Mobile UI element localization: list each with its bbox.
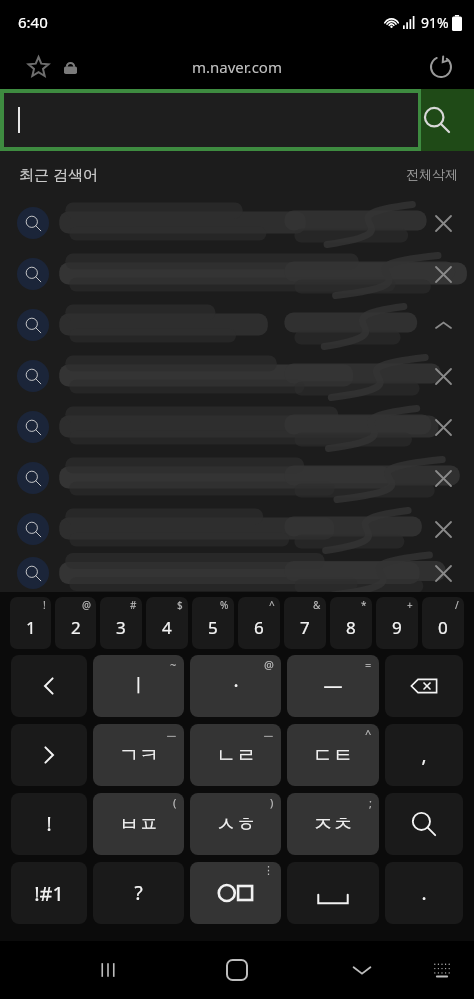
- button[interactable]: ㅡ: [93, 724, 184, 786]
- staticText: (: [173, 795, 177, 810]
- staticText: ㅡ: [263, 726, 274, 740]
- button[interactable]: &: [284, 597, 326, 649]
- button[interactable]: ;: [287, 793, 379, 855]
- staticText: 8: [346, 616, 356, 639]
- button[interactable]: $: [146, 597, 188, 649]
- button[interactable]: %: [192, 597, 234, 649]
- button[interactable]: Emoji: [190, 862, 281, 924]
- staticText: ^: [365, 726, 372, 741]
- button[interactable]: #: [100, 597, 142, 649]
- staticText: #: [130, 598, 137, 612]
- button[interactable]: Recents: [88, 950, 128, 990]
- button[interactable]: Home: [215, 948, 259, 992]
- staticText: 0: [438, 616, 448, 639]
- button[interactable]: .: [385, 862, 463, 924]
- button[interactable]: Remove: [0, 350, 474, 401]
- staticText: 6: [254, 616, 264, 639]
- button[interactable]: Bookmark: [22, 51, 54, 83]
- button[interactable]: ,: [385, 724, 463, 786]
- button[interactable]: Backspace: [385, 655, 463, 717]
- staticText: 91%: [421, 13, 449, 32]
- staticText: ㅈㅊ: [313, 812, 353, 837]
- staticText: /: [455, 598, 459, 612]
- button[interactable]: Remove: [426, 308, 460, 342]
- button[interactable]: Space: [287, 862, 379, 924]
- staticText: 4: [162, 616, 172, 639]
- button[interactable]: ^: [238, 597, 280, 649]
- staticText: ㅡ: [166, 726, 177, 740]
- button[interactable]: Hide keyboard: [342, 950, 382, 990]
- staticText: ㄴㄹ: [216, 743, 256, 768]
- button[interactable]: 전체삭제: [402, 160, 462, 188]
- button[interactable]: ?: [93, 862, 184, 924]
- staticText: !: [46, 811, 52, 837]
- staticText: &: [313, 598, 321, 612]
- staticText: +: [407, 598, 413, 612]
- button[interactable]: !: [11, 793, 87, 855]
- button[interactable]: Remove: [426, 461, 460, 495]
- staticText: 9: [392, 616, 402, 639]
- button[interactable]: *: [330, 597, 372, 649]
- staticText: ,: [421, 742, 427, 768]
- staticText: m.naver.com: [192, 57, 282, 77]
- button[interactable]: Switch keyboard: [424, 952, 460, 988]
- button[interactable]: Remove: [426, 257, 460, 291]
- button[interactable]: =: [287, 655, 379, 717]
- button[interactable]: Remove: [0, 452, 474, 503]
- button[interactable]: ChevLeft: [11, 655, 87, 717]
- button[interactable]: Search: [418, 89, 474, 151]
- button[interactable]: Remove: [426, 556, 460, 590]
- staticText: 3: [116, 616, 126, 639]
- staticText: %: [220, 598, 229, 612]
- button[interactable]: Remove: [426, 206, 460, 240]
- button[interactable]: (: [93, 793, 184, 855]
- staticText: $: [177, 598, 183, 612]
- staticText: ~: [170, 657, 177, 672]
- staticText: @: [82, 598, 91, 612]
- button[interactable]: ): [190, 793, 281, 855]
- staticText: ^: [269, 598, 275, 612]
- button[interactable]: Remove: [0, 248, 474, 299]
- staticText: 6:40: [18, 12, 48, 32]
- staticText: @: [264, 657, 274, 672]
- button[interactable]: Remove: [0, 197, 474, 248]
- button[interactable]: Remove: [0, 503, 474, 554]
- staticText: 전체삭제: [406, 166, 458, 182]
- staticText: 1: [26, 616, 36, 639]
- staticText: ㅅㅎ: [216, 812, 256, 837]
- staticText: *: [361, 598, 367, 612]
- staticText: 5: [208, 616, 218, 639]
- staticText: !: [43, 598, 46, 612]
- button[interactable]: Remove: [426, 359, 460, 393]
- button[interactable]: !: [10, 597, 51, 649]
- staticText: ㄱㅋ: [119, 743, 159, 768]
- button[interactable]: Remove: [426, 512, 460, 546]
- staticText: =: [365, 657, 372, 672]
- button[interactable]: Reload: [424, 50, 458, 84]
- button[interactable]: Remove: [0, 554, 474, 592]
- button[interactable]: Search: [385, 793, 463, 855]
- button[interactable]: !#1: [11, 862, 87, 924]
- staticText: ;: [369, 795, 372, 810]
- button[interactable]: Remove: [426, 410, 460, 444]
- staticText: —: [323, 673, 343, 699]
- button[interactable]: Remove: [0, 299, 474, 350]
- button[interactable]: @: [55, 597, 96, 649]
- button[interactable]: /: [422, 597, 464, 649]
- staticText: ㄷㅌ: [313, 743, 353, 768]
- button[interactable]: ^: [287, 724, 379, 786]
- staticText: ㅣ: [129, 674, 148, 698]
- button[interactable]: ChevRight: [11, 724, 87, 786]
- button[interactable]: +: [376, 597, 418, 649]
- staticText: ?: [134, 880, 143, 906]
- button[interactable]: @: [190, 655, 281, 717]
- staticText: 2: [71, 616, 81, 639]
- staticText: ㅂㅍ: [119, 812, 159, 837]
- staticText: ·: [233, 673, 239, 699]
- button[interactable]: Remove: [0, 401, 474, 452]
- staticText: .: [421, 880, 427, 906]
- button[interactable]: ㅡ: [190, 724, 281, 786]
- button[interactable]: ~: [93, 655, 184, 717]
- staticText: 7: [300, 616, 310, 639]
- button[interactable]: [4, 93, 418, 147]
